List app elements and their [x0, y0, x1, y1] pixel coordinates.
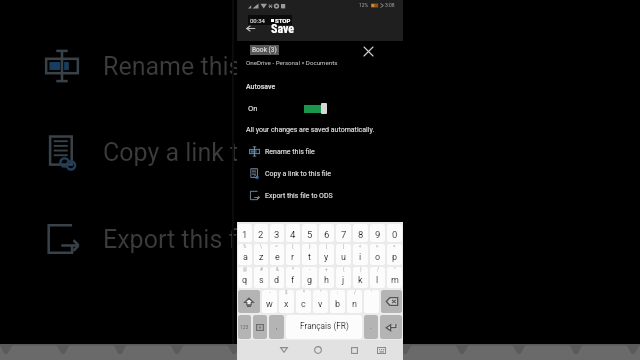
staticText: c	[301, 299, 306, 310]
staticText: /	[377, 267, 379, 272]
staticText: 3:08	[385, 2, 395, 8]
button[interactable]: Rename this file	[237, 141, 403, 162]
staticText: Copy a link t	[103, 138, 239, 167]
staticText: 6	[324, 229, 330, 240]
staticText: o	[375, 252, 381, 263]
button[interactable]: Period	[364, 315, 378, 339]
button[interactable]: /	[370, 267, 385, 288]
button[interactable]: Close	[359, 42, 377, 60]
button[interactable]: $	[279, 290, 294, 313]
button[interactable]: 9	[370, 224, 385, 242]
staticText: Save	[271, 22, 295, 36]
button[interactable]: :	[330, 290, 345, 313]
button[interactable]: Comma	[269, 315, 284, 339]
staticText: 8	[358, 229, 364, 240]
button[interactable]: ~	[270, 244, 284, 265]
button[interactable]: Back	[242, 20, 258, 36]
staticText: "	[320, 290, 322, 295]
button[interactable]: %	[238, 244, 252, 265]
staticText: "	[394, 267, 396, 272]
staticText: s	[259, 275, 264, 286]
button[interactable]: "	[387, 267, 402, 288]
staticText: f	[291, 275, 295, 286]
staticText: ~	[275, 244, 279, 249]
staticText: j	[342, 275, 345, 286]
button[interactable]: @	[238, 267, 252, 288]
button[interactable]: -	[262, 290, 277, 313]
button[interactable]: 0	[387, 224, 402, 242]
button[interactable]: 1	[238, 224, 252, 242]
staticText: .	[370, 323, 372, 331]
staticText: k	[358, 275, 363, 286]
button[interactable]: *	[286, 267, 300, 288]
button[interactable]: /	[347, 290, 362, 313]
button[interactable]: ]	[336, 244, 351, 265]
staticText: ,	[276, 323, 278, 331]
staticText: l	[376, 275, 379, 286]
button[interactable]: *	[296, 290, 311, 313]
button[interactable]: +	[319, 267, 334, 288]
staticText: All your changes are saved automatically…	[246, 126, 375, 134]
button[interactable]: Numbers	[238, 315, 251, 339]
button[interactable]: 7	[336, 224, 351, 242]
button[interactable]: 4	[286, 224, 300, 242]
staticText: 2	[258, 229, 264, 240]
staticText: {	[292, 244, 294, 249]
button[interactable]: 5	[302, 224, 317, 242]
staticText: Autosave	[246, 83, 276, 91]
staticText: :	[337, 290, 339, 295]
button[interactable]: [	[319, 244, 334, 265]
button[interactable]: #	[254, 267, 268, 288]
button[interactable]: Français (FR)	[286, 315, 362, 339]
button[interactable]: 6	[319, 224, 334, 242]
button[interactable]: >	[370, 244, 385, 265]
button[interactable]: Enter	[380, 315, 402, 339]
button[interactable]: Home	[310, 340, 326, 360]
button[interactable]: =	[387, 244, 402, 265]
staticText: Export this file to ODS	[265, 192, 333, 200]
button[interactable]: Emoji	[253, 315, 267, 339]
staticText: 0	[392, 229, 398, 240]
button[interactable]: Export this file to ODS	[237, 185, 403, 206]
button[interactable]: 3	[270, 224, 284, 242]
staticText: ’	[371, 290, 372, 295]
staticText: 9	[375, 229, 381, 240]
button[interactable]: }	[302, 244, 317, 265]
staticText: [	[326, 244, 328, 249]
staticText: e	[275, 252, 280, 263]
staticText: (	[343, 267, 345, 272]
button[interactable]: "	[313, 290, 328, 313]
staticText: $	[285, 290, 288, 295]
staticText: On	[248, 104, 258, 113]
staticText: STOP	[275, 17, 291, 24]
staticText: *	[303, 290, 305, 295]
button[interactable]: 8	[353, 224, 368, 242]
staticText: Book (3)	[252, 46, 277, 54]
staticText: *	[292, 267, 294, 272]
button[interactable]: Backspace	[381, 290, 402, 313]
button[interactable]: (	[336, 267, 351, 288]
button[interactable]: )	[353, 267, 368, 288]
staticText: m	[391, 275, 399, 286]
staticText: 123	[240, 324, 249, 330]
staticText: t	[308, 252, 311, 263]
staticText: 00:34	[250, 17, 265, 24]
button[interactable]: Recents	[346, 340, 362, 360]
button[interactable]: Shift	[238, 290, 260, 313]
button[interactable]: Back	[276, 340, 292, 360]
button[interactable]: 2	[254, 224, 268, 242]
button[interactable]: {	[286, 244, 300, 265]
button[interactable]: -	[302, 267, 317, 288]
button[interactable]: Autosave on	[302, 100, 330, 115]
staticText: a	[243, 252, 248, 263]
staticText: \	[260, 244, 262, 249]
button[interactable]: Keyboard	[373, 340, 389, 360]
staticText: #	[260, 267, 263, 272]
staticText: q	[242, 275, 248, 286]
button[interactable]: <	[353, 244, 368, 265]
button[interactable]: Copy a link to this file	[237, 163, 403, 184]
button[interactable]: \	[254, 244, 268, 265]
staticText: i	[359, 252, 362, 263]
button[interactable]: &	[270, 267, 284, 288]
